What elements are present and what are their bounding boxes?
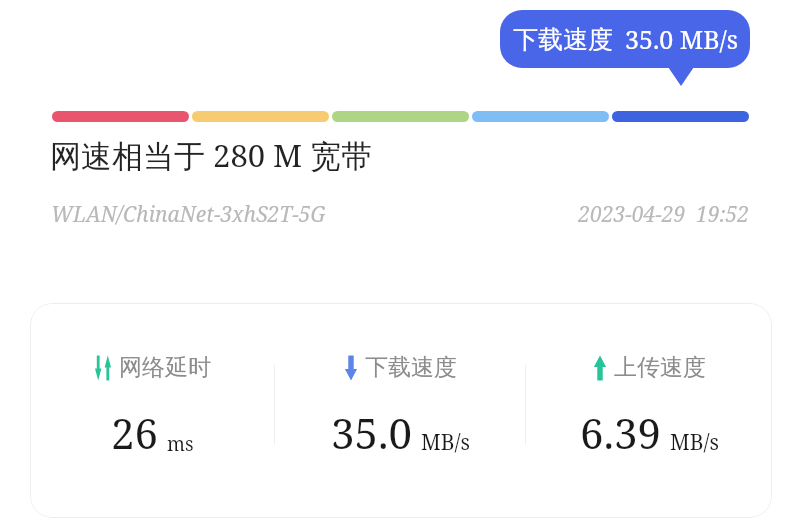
button[interactable]: 上传速度	[526, 353, 772, 461]
staticText: MB/s	[670, 428, 719, 457]
other: 下载速度	[343, 355, 359, 381]
button[interactable]: 下载速度	[275, 353, 525, 461]
staticText: 网络延时	[119, 353, 211, 382]
staticText: 下载速度	[365, 353, 457, 382]
staticText: 6.39	[580, 404, 661, 461]
staticText: 35.0	[331, 404, 412, 461]
other: 上传速度	[592, 355, 608, 381]
staticText: WLAN/ChinaNet-3xhS2T-5G	[51, 200, 326, 229]
staticText: 35.0 MB/s	[625, 22, 738, 56]
staticText: 2023-04-29 19:52	[500, 200, 749, 229]
button[interactable]: 网络延时	[30, 303, 772, 518]
staticText: 上传速度	[614, 353, 706, 382]
other: 网络延时	[93, 355, 113, 381]
staticText: 下载速度	[513, 24, 613, 55]
button[interactable]: 下载速度	[500, 10, 750, 90]
staticText: 网速相当于 280 M 宽带	[50, 134, 373, 176]
staticText: ms	[167, 431, 194, 457]
button[interactable]: 网络延时	[30, 353, 274, 461]
staticText: MB/s	[421, 428, 470, 457]
staticText: 26	[111, 404, 158, 461]
